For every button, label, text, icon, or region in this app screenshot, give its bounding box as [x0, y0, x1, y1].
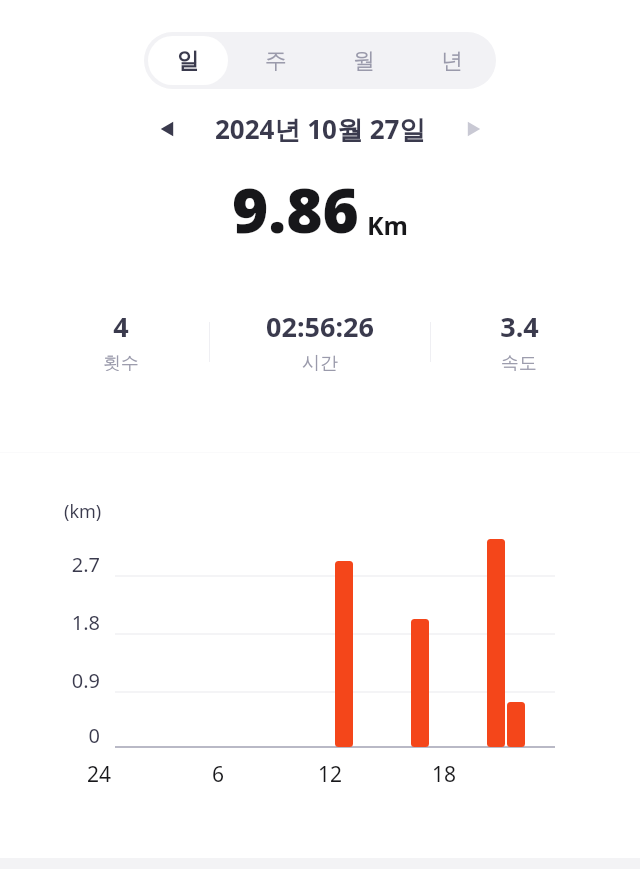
button[interactable]: 4 [33, 308, 209, 375]
staticText: 6 [198, 760, 238, 789]
button[interactable]: 4 [33, 281, 607, 402]
staticText: 주 [265, 47, 287, 75]
staticText: 12 [310, 760, 350, 789]
button[interactable]: 년 [412, 36, 492, 85]
button[interactable]: 3.4 [431, 308, 607, 375]
staticText: 속도 [501, 352, 537, 375]
staticText: 02:56:26 [266, 308, 374, 345]
staticText: 9.86 [232, 167, 359, 251]
staticText: 년 [441, 47, 463, 75]
staticText: 0 [52, 722, 100, 749]
staticText: 4 [113, 308, 129, 345]
button[interactable]: 월 [324, 36, 404, 85]
staticText: 18 [424, 760, 464, 789]
button[interactable]: 다음 날짜 [452, 107, 496, 151]
staticText: 3.4 [500, 308, 539, 345]
staticText: 2024년 10월 27일 [215, 111, 426, 147]
button[interactable]: 일 [148, 36, 228, 85]
staticText: 일 [177, 47, 199, 75]
staticText: 1.8 [52, 609, 100, 636]
staticText: 월 [353, 47, 375, 75]
button[interactable]: 이전 날짜 [145, 107, 189, 151]
staticText: (km) [64, 499, 102, 524]
staticText: 0.9 [52, 667, 100, 694]
staticText: Km [367, 208, 408, 242]
button[interactable]: 02:56:26 [210, 308, 430, 375]
staticText: 시간 [302, 352, 338, 375]
staticText: 횟수 [103, 352, 139, 375]
staticText: 2.7 [52, 551, 100, 578]
staticText: 24 [79, 760, 119, 789]
button[interactable]: 주 [236, 36, 316, 85]
